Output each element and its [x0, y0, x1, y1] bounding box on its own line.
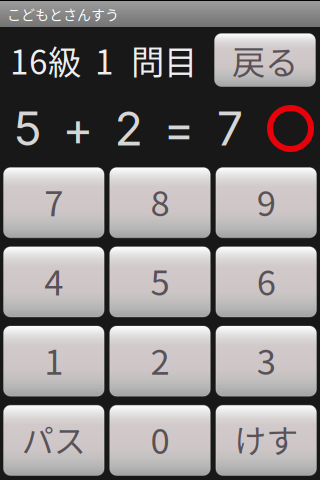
staticText: 戻る	[232, 36, 298, 84]
staticText: 0	[150, 414, 169, 464]
staticText: パス	[22, 416, 86, 462]
staticText: 4	[44, 255, 63, 305]
button[interactable]: 5	[109, 246, 211, 317]
staticText: 3	[257, 334, 276, 385]
staticText: 1	[44, 334, 63, 385]
staticText: 2	[150, 334, 169, 385]
staticText: けす	[234, 416, 298, 462]
button[interactable]: 8	[109, 167, 211, 238]
button[interactable]: 9	[215, 167, 317, 238]
staticText: 8	[150, 176, 169, 226]
staticText: 16級	[10, 36, 81, 84]
button[interactable]: 戻る	[214, 33, 316, 87]
staticText: 9	[257, 176, 276, 226]
button[interactable]: 2	[109, 325, 211, 397]
staticText: 7	[44, 176, 63, 226]
button[interactable]: 3	[215, 325, 317, 397]
button[interactable]: 4	[3, 246, 105, 317]
button[interactable]: 0	[109, 405, 211, 476]
staticText: 6	[257, 255, 276, 305]
button[interactable]: けす	[215, 405, 317, 476]
staticText: 問目	[131, 36, 197, 84]
staticText: 1	[95, 36, 114, 84]
staticText: 5	[13, 100, 41, 157]
staticText: 2	[114, 100, 142, 157]
staticText: +	[62, 100, 93, 157]
staticText: 7	[217, 100, 243, 157]
button[interactable]: 7	[3, 167, 105, 238]
staticText: =	[164, 100, 195, 157]
button[interactable]: 6	[215, 246, 317, 317]
button[interactable]: パス	[3, 405, 105, 476]
button[interactable]: 1	[3, 325, 105, 397]
staticText: 5	[150, 255, 169, 305]
staticText: こどもとさんすう	[7, 4, 119, 24]
